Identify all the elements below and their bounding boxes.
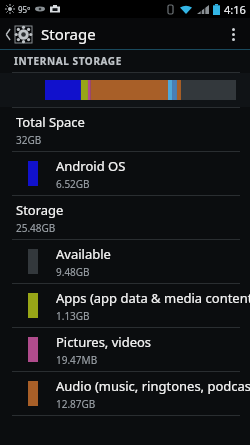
staticText: 9.48GB: [56, 265, 90, 279]
staticText: Total Space: [16, 113, 85, 131]
staticText: Available: [56, 245, 111, 263]
staticText: 12.87GB: [56, 397, 96, 411]
button[interactable]: Available: [0, 240, 250, 283]
button[interactable]: More options: [222, 18, 244, 50]
staticText: 25.48GB: [16, 221, 56, 235]
button[interactable]: Total Space: [0, 108, 250, 151]
button[interactable]: Pictures, videos: [0, 328, 250, 371]
staticText: 4:16: [224, 2, 246, 17]
staticText: 1.13GB: [56, 309, 90, 323]
staticText: 32GB: [16, 133, 42, 147]
button[interactable]: Storage: [0, 196, 250, 239]
staticText: 95º: [18, 4, 31, 15]
staticText: Audio (music, ringtones, podcasts): [56, 377, 250, 395]
button[interactable]: Apps (app data & media content): [0, 284, 250, 327]
button[interactable]: Audio (music, ringtones, podcasts): [0, 372, 250, 415]
staticText: Apps (app data & media content): [56, 289, 250, 307]
button[interactable]: Android OS: [0, 152, 250, 195]
staticText: INTERNAL STORAGE: [14, 54, 122, 68]
button[interactable]: Navigate up: [3, 25, 35, 44]
staticText: 19.47MB: [56, 353, 98, 367]
staticText: Storage: [16, 201, 64, 219]
staticText: Storage: [41, 24, 96, 44]
staticText: Pictures, videos: [56, 333, 152, 351]
staticText: Android OS: [56, 157, 126, 175]
staticText: 6.52GB: [56, 177, 90, 191]
